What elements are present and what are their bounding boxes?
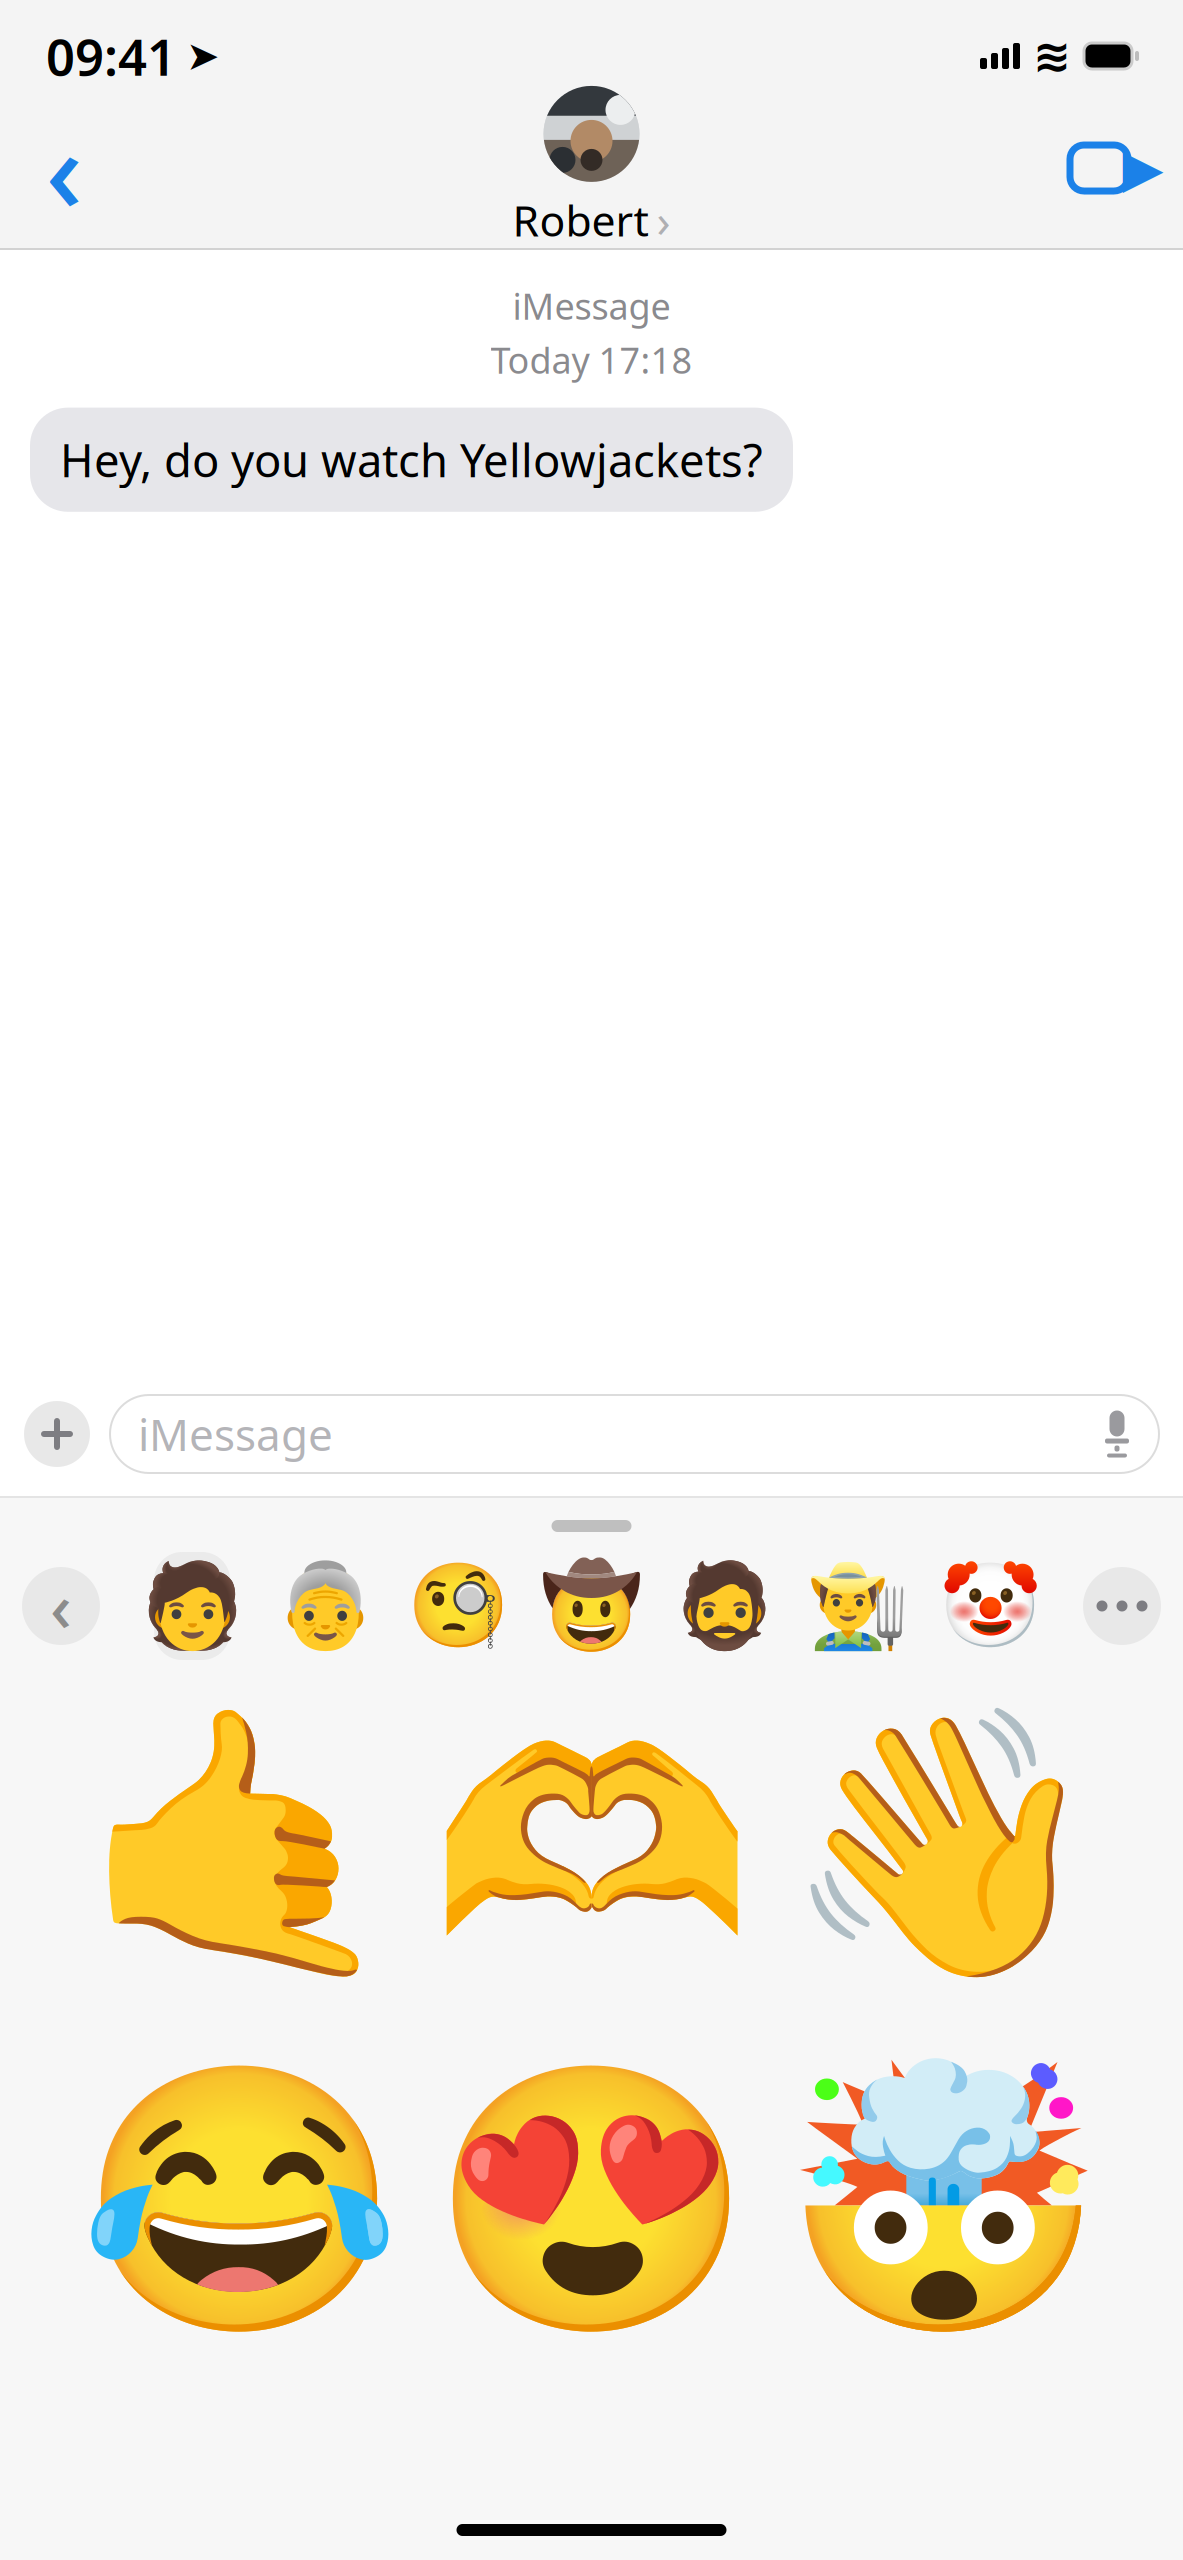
staticText: 😂 [77,2052,401,2350]
button[interactable]: Memoji character [684,1552,766,1660]
staticText: 👋 [781,1696,1105,1994]
staticText: 09:41 [46,22,176,90]
staticText: Hey, do you watch Yellowjackets? [60,430,763,490]
staticText: 😍 [429,2052,753,2350]
button[interactable]: Memoji character [151,1552,233,1660]
staticText: 🤠 [540,1559,643,1653]
staticText: 🤙 [77,1696,401,1994]
staticText: 🫶 [429,1696,753,1994]
staticText: Robert [512,192,648,248]
button[interactable]: FaceTime [1059,103,1169,233]
staticText: iMessage [138,1405,333,1463]
button[interactable]: Robert, contact details [488,80,694,256]
staticText: 🧔 [673,1559,776,1653]
button[interactable]: Waving sticker [767,1680,1119,2010]
staticText: 🤯 [781,2052,1105,2350]
button[interactable]: Heart hands sticker [415,1680,767,2010]
staticText: ‹ [45,92,82,244]
button[interactable]: iMessage text field [110,1395,1159,1473]
staticText: ➤ [186,33,220,79]
button[interactable]: Memoji character [550,1552,632,1660]
button[interactable]: Laughing sticker [63,2036,415,2366]
button[interactable]: Apps [24,1401,90,1467]
button[interactable]: Memoji character [950,1552,1032,1660]
button[interactable]: Memoji character [284,1552,366,1660]
staticText: iMessage [512,282,670,330]
staticText: Today 17:18 [490,336,692,384]
button[interactable]: More memoji [1083,1567,1161,1645]
staticText: 🧑 [141,1559,244,1653]
button[interactable]: Back to apps [22,1567,100,1645]
staticText: › [656,190,670,250]
button[interactable]: Memoji character [417,1552,499,1660]
staticText: ▶ [1122,138,1163,198]
button[interactable]: Mind blown sticker [767,2036,1119,2366]
staticText: 👨‍🌾 [806,1559,909,1653]
staticText: 🤡 [939,1559,1042,1653]
button[interactable]: Back [18,103,110,233]
button[interactable]: Call me sticker [63,1680,415,2010]
staticText: ≋ [1033,30,1071,82]
button[interactable]: Heart eyes sticker [415,2036,767,2366]
staticText: 🧐 [407,1559,510,1653]
button[interactable]: Memoji character [817,1552,899,1660]
staticText: 👵 [274,1559,377,1653]
staticText: ‹ [50,1562,72,1650]
